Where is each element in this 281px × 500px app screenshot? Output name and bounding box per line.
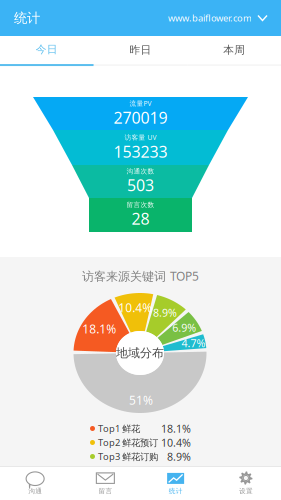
staticText: 昨日 — [129, 43, 151, 56]
staticText: 28 — [131, 208, 149, 229]
staticText: 10.4% — [161, 435, 191, 450]
button[interactable]: 统计 — [140, 467, 211, 500]
button[interactable]: 设置 — [211, 467, 281, 500]
staticText: 地域分布 — [116, 346, 164, 360]
staticText: 本周 — [223, 43, 245, 56]
staticText: Top1 鲜花 — [98, 422, 140, 435]
button[interactable]: 沟通 — [0, 467, 70, 500]
staticText: www.baiflower.com — [168, 12, 252, 24]
staticText: 8.9% — [167, 449, 191, 464]
staticText: 8.9% — [153, 305, 177, 320]
staticText: 今日 — [36, 43, 58, 56]
staticText: 153233 — [113, 141, 167, 162]
staticText: 18.1% — [82, 321, 116, 337]
staticText: 访客来源关键词 TOP5 — [82, 268, 199, 284]
staticText: 270019 — [113, 107, 167, 128]
staticText: 6.9% — [172, 320, 196, 335]
button[interactable]: www.baiflower.com — [168, 12, 267, 24]
staticText: 51% — [129, 392, 153, 408]
staticText: 设置 — [239, 487, 253, 495]
button[interactable]: 今日 — [0, 36, 94, 65]
staticText: 沟通 — [28, 487, 42, 495]
button[interactable]: 昨日 — [94, 36, 187, 65]
staticText: Top3 鲜花订购 — [98, 450, 158, 463]
staticText: 留言次数 — [126, 201, 154, 209]
staticText: 4.7% — [181, 336, 205, 350]
button[interactable]: 留言 — [70, 467, 140, 500]
button[interactable]: 本周 — [187, 36, 281, 65]
staticText: 统计 — [169, 487, 183, 495]
staticText: 10.4% — [118, 300, 152, 316]
staticText: 统计 — [14, 10, 40, 26]
staticText: 沟通次数 — [126, 167, 154, 175]
staticText: 访客量 UV — [124, 133, 156, 142]
staticText: 流量PV — [129, 99, 151, 108]
staticText: 503 — [127, 174, 154, 196]
staticText: 留言 — [98, 487, 112, 495]
staticText: 18.1% — [161, 421, 191, 436]
staticText: Top2 鲜花预订 — [98, 436, 158, 449]
